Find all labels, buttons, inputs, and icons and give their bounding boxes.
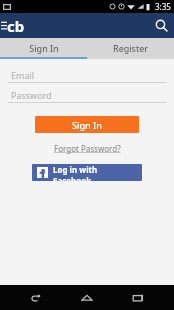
button[interactable]: Email [8,68,166,83]
button[interactable]: Menu [0,16,25,36]
staticText: Email [11,69,35,81]
button[interactable]: Back [21,285,51,310]
staticText: 3:35 [155,1,171,12]
button[interactable]: Recents [123,285,153,310]
staticText: Password [11,89,52,101]
button[interactable]: Forgot Password? [50,142,125,155]
button[interactable]: Register [87,38,174,57]
staticText: Forgot Password? [54,143,121,154]
button[interactable]: Log in with Facebook [32,164,142,181]
staticText: Sign In [29,42,59,54]
button[interactable]: Sign In [0,38,87,57]
staticText: Register [113,42,148,54]
button[interactable]: Home [72,285,102,310]
staticText: cb [7,16,25,36]
staticText: Sign In [72,119,102,131]
button[interactable]: Password [8,88,166,103]
staticText: Log in with Facebook [53,164,137,181]
button[interactable]: Search [149,13,174,38]
button[interactable]: Sign In [35,116,139,133]
